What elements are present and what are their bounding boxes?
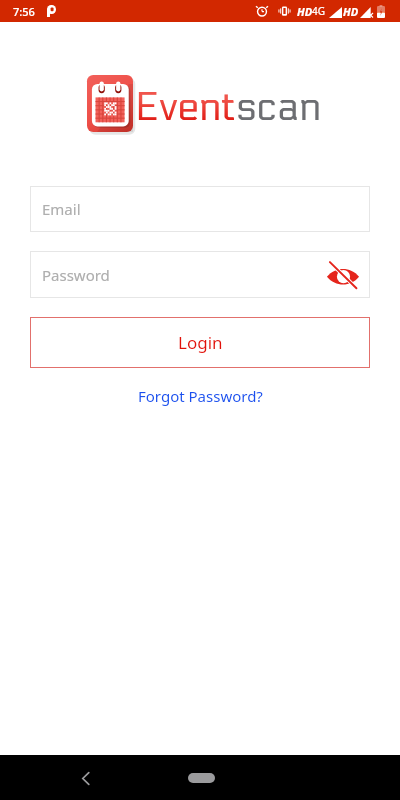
staticText: 7:56	[13, 4, 35, 19]
staticText: HD	[297, 4, 313, 19]
staticText: Email	[42, 199, 81, 219]
button[interactable]: Home	[171, 763, 231, 793]
button[interactable]: Back	[70, 762, 102, 794]
button[interactable]: Show password	[324, 256, 362, 294]
staticText: Password	[42, 265, 110, 285]
staticText: scan	[236, 84, 321, 130]
staticText: 4G	[312, 4, 325, 18]
button[interactable]: Forgot Password?	[128, 380, 273, 412]
staticText: Event	[135, 84, 236, 130]
button[interactable]: Email	[30, 186, 370, 232]
button[interactable]: Password	[30, 251, 370, 298]
staticText: Login	[178, 331, 223, 354]
button[interactable]: Login	[30, 317, 370, 368]
staticText: HD	[343, 4, 359, 19]
